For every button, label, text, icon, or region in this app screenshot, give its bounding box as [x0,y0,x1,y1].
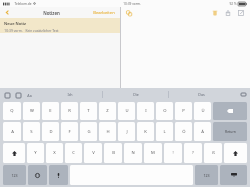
staticText: F [68,129,71,135]
staticText: Das [198,92,205,97]
staticText: A [11,129,14,135]
staticText: E [49,108,52,114]
staticText: Y [34,150,37,156]
button[interactable]: Die [103,90,168,99]
button[interactable]: S [23,122,40,141]
staticText: J [126,129,128,135]
staticText: R [68,108,71,114]
staticText: P [182,108,185,114]
button[interactable]: Tastatur ausblenden [239,91,247,99]
staticText: Telekom.de [14,2,32,6]
staticText: ? [192,150,194,156]
button[interactable]: Formatieren [3,91,11,99]
staticText: Ä [201,129,204,135]
staticText: L [163,129,166,135]
staticText: D [49,129,53,135]
staticText: U [125,108,129,114]
button[interactable]: O [156,102,173,120]
button[interactable]: P [175,102,192,120]
button[interactable]: Foto einfügen [14,91,22,99]
staticText: M [151,150,155,156]
button[interactable]: Löschtaste [213,102,247,120]
button[interactable]: Ö [175,122,192,141]
button[interactable]: Emoji [28,165,47,185]
button[interactable]: Diktieren [49,165,68,185]
staticText: Return [225,129,236,134]
staticText: Ü [201,108,205,114]
button[interactable]: Umschalttaste [224,143,247,163]
button[interactable]: C [65,143,82,163]
staticText: G [87,129,91,135]
button[interactable]: Löschen [210,8,220,18]
button[interactable]: Q [3,102,21,120]
button[interactable]: D [42,122,59,141]
button[interactable]: Ü [194,102,211,120]
button[interactable]: X [46,143,63,163]
button[interactable]: Bearbeiten [91,10,117,16]
button[interactable]: H [99,122,116,141]
staticText: Ö [182,129,186,135]
staticText: Ich [67,92,73,97]
button[interactable]: 123 [195,165,218,185]
button[interactable]: L [156,122,173,141]
staticText: C [72,150,75,156]
button[interactable]: J [118,122,135,141]
staticText: 123 [203,173,210,178]
button[interactable]: ? [184,143,202,163]
staticText: B [112,150,115,156]
button[interactable]: Y [27,143,44,163]
button[interactable]: Das [169,90,234,99]
button[interactable]: N [124,143,142,163]
staticText: I [145,108,147,114]
button[interactable]: 123 [3,165,26,185]
button[interactable]: Zurück [3,8,12,17]
staticText: 92 % [229,2,237,6]
button[interactable]: W [23,102,40,120]
button[interactable]: I [137,102,154,120]
button[interactable]: V [84,143,102,163]
button[interactable]: Notizen Ordner [125,9,133,17]
staticText: Z [106,108,109,114]
button[interactable]: Tastatur ausblenden [220,165,247,185]
staticText: ß [212,150,215,156]
staticText: K [144,129,147,135]
button[interactable]: Umschalttaste [3,143,25,163]
staticText: Kein zusätzlicher Text [25,28,59,32]
button[interactable]: R [61,102,78,120]
staticText: O [163,108,167,114]
button[interactable]: Teilen [223,8,233,18]
button[interactable]: Return [213,122,247,141]
button[interactable]: Schrift [25,91,33,99]
button[interactable]: U [118,102,135,120]
button[interactable]: K [137,122,154,141]
button[interactable]: B [104,143,122,163]
staticText: Neue Notiz [4,21,26,26]
button[interactable]: Neue Notiz [0,18,120,33]
button[interactable]: F [61,122,78,141]
staticText: Aa [27,93,32,98]
staticText: Bearbeiten [93,10,115,16]
staticText: H [106,129,110,135]
button[interactable]: M [144,143,162,163]
staticText: ! [172,150,174,156]
staticText: T [87,108,90,114]
button[interactable]: Ich [38,90,102,99]
button[interactable]: A [3,122,21,141]
staticText: 10:39 vorm. [123,2,141,6]
button[interactable]: G [80,122,97,141]
button[interactable]: ! [164,143,182,163]
staticText: X [53,150,56,156]
staticText: Die [133,92,139,97]
staticText: V [92,150,95,156]
button[interactable]: T [80,102,97,120]
button[interactable]: Z [99,102,116,120]
staticText: N [131,150,135,156]
button[interactable]: Ä [194,122,211,141]
staticText: Notizen [43,10,60,16]
staticText: S [30,129,33,135]
button[interactable]: ß [204,143,222,163]
button[interactable]: E [42,102,59,120]
button[interactable]: Neue Notiz [236,8,246,18]
staticText: Q [10,108,14,114]
